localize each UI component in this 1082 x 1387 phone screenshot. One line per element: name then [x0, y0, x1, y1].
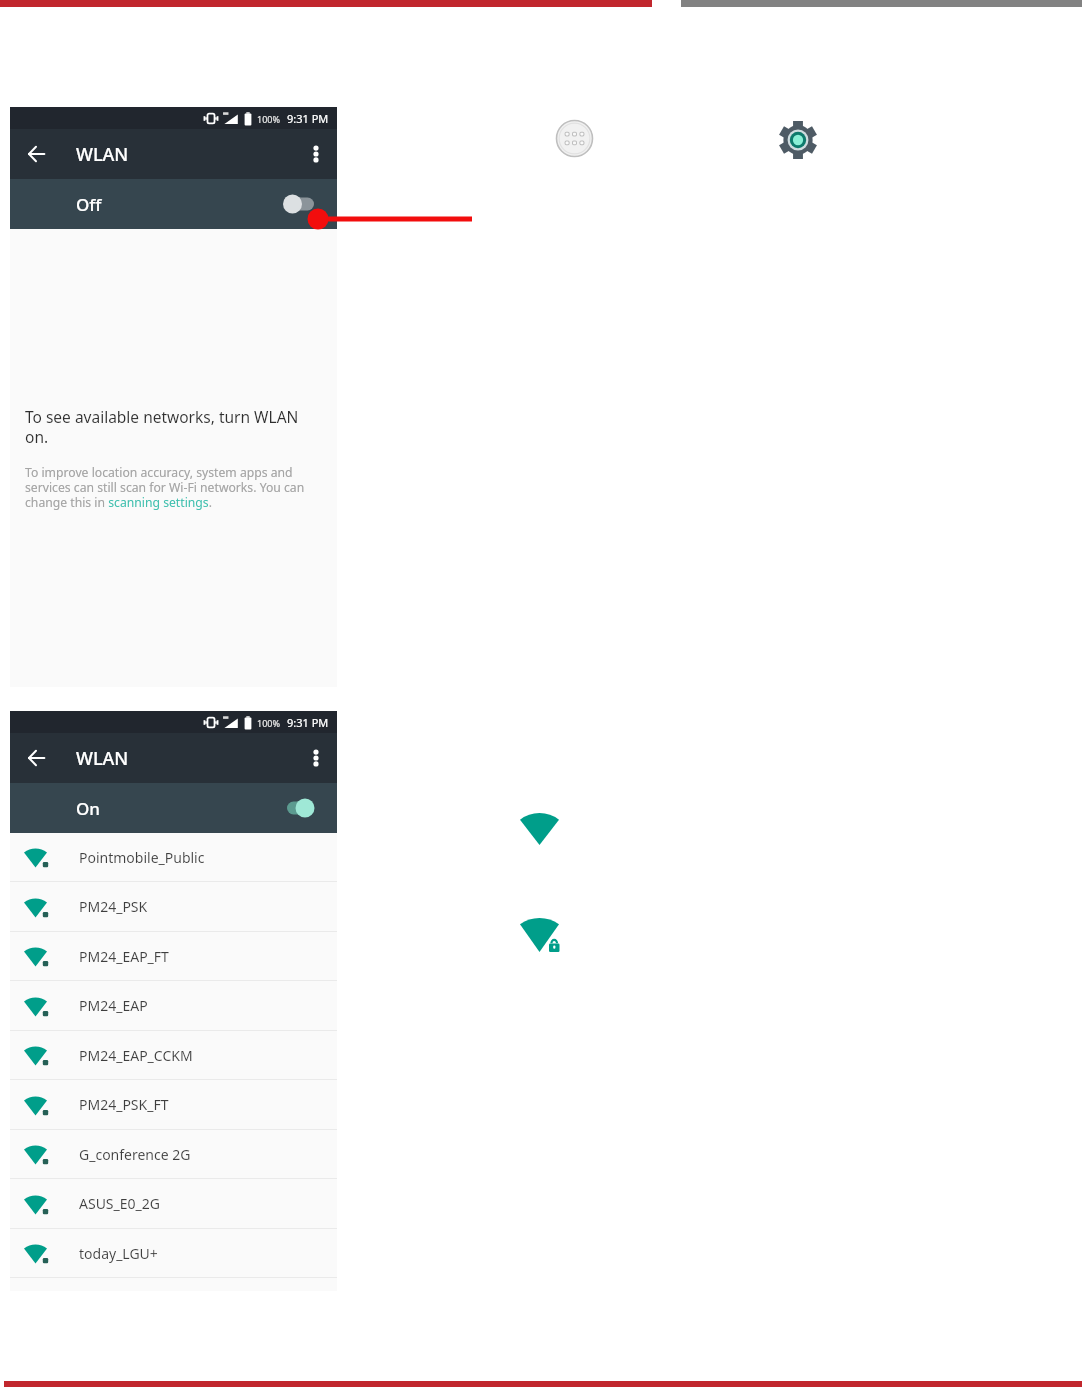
button[interactable]: All apps: [555, 119, 594, 158]
staticText: ASUS_E0_2G: [79, 1194, 160, 1213]
button[interactable]: Settings: [779, 120, 817, 160]
staticText: 9:31 PM: [287, 111, 329, 126]
button[interactable]: PM24_EAP_CCKM: [10, 1031, 337, 1079]
staticText: PM24_EAP_FT: [79, 947, 169, 966]
staticText: Off: [76, 193, 102, 216]
button[interactable]: PM24_PSK_FT: [10, 1080, 337, 1129]
staticText: PM24_EAP: [79, 996, 148, 1015]
staticText: 100%: [257, 717, 280, 729]
staticText: PM24_PSK: [79, 897, 148, 916]
button[interactable]: Back: [10, 733, 62, 783]
button[interactable]: G_conference 2G: [10, 1130, 337, 1178]
staticText: Pointmobile_Public: [79, 848, 205, 867]
staticText: PM24_EAP_CCKM: [79, 1046, 193, 1065]
staticText: On: [76, 797, 100, 820]
staticText: To improve location accuracy, system app…: [25, 464, 312, 510]
staticText: To see available networks, turn WLAN on.: [25, 406, 312, 447]
button[interactable]: PM24_EAP_FT: [10, 932, 337, 980]
button[interactable]: Pointmobile_Public: [10, 833, 337, 881]
button[interactable]: Back: [10, 129, 62, 179]
staticText: G_conference 2G: [79, 1145, 191, 1164]
staticText: 100%: [257, 113, 280, 125]
staticText: 9:31 PM: [287, 715, 329, 730]
button[interactable]: PM24_PSK: [10, 882, 337, 931]
button[interactable]: ASUS_E0_2G: [10, 1179, 337, 1228]
button[interactable]: More options: [295, 129, 337, 179]
staticText: PM24_PSK_FT: [79, 1095, 169, 1114]
staticText: today_LGU+: [79, 1244, 158, 1263]
button[interactable]: Off: [10, 179, 337, 229]
button[interactable]: PM24_EAP: [10, 981, 337, 1030]
button[interactable]: On: [10, 783, 337, 833]
button[interactable]: More options: [295, 733, 337, 783]
button[interactable]: today_LGU+: [10, 1229, 337, 1277]
staticText: WLAN: [76, 746, 129, 771]
staticText: WLAN: [76, 142, 129, 167]
